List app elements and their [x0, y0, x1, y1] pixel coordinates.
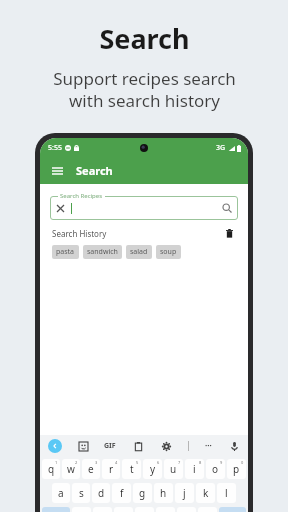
button[interactable]: a — [52, 483, 70, 503]
staticText: 8 — [199, 460, 202, 465]
staticText: p — [233, 462, 240, 476]
button[interactable]: r — [102, 459, 120, 479]
staticText: o — [212, 462, 219, 476]
staticText: r — [109, 462, 114, 476]
staticText: Search History — [52, 228, 107, 239]
staticText: GIF — [104, 441, 116, 451]
other: Clear — [56, 204, 65, 213]
button[interactable]: Back — [48, 439, 62, 453]
staticText: soup — [160, 247, 177, 257]
staticText: 4 — [115, 460, 118, 465]
staticText: l — [225, 486, 228, 500]
staticText: 7 — [178, 460, 181, 465]
button[interactable]: k — [196, 483, 215, 503]
button[interactable]: j — [175, 483, 194, 503]
staticText: i — [193, 462, 196, 476]
staticText: d — [98, 486, 105, 500]
button[interactable]: g — [133, 483, 152, 503]
staticText: u — [170, 462, 177, 476]
staticText: k — [203, 486, 209, 500]
staticText: 1 — [55, 460, 58, 465]
button[interactable]: clipboard — [132, 440, 144, 452]
staticText: e — [88, 462, 94, 476]
staticText: 3 — [95, 460, 98, 465]
button[interactable]: pasta — [52, 245, 79, 259]
button[interactable]: q — [42, 459, 60, 479]
button[interactable]: l — [217, 483, 236, 503]
staticText: f — [120, 486, 124, 500]
button[interactable]: More — [205, 442, 212, 450]
other: Search — [222, 203, 232, 213]
staticText: t — [130, 462, 134, 476]
button[interactable]: o — [206, 459, 225, 479]
button[interactable]: settings — [160, 440, 172, 452]
staticText: salad — [130, 247, 148, 257]
button[interactable]: d — [92, 483, 110, 503]
staticText: 0 — [241, 460, 244, 465]
button[interactable]: u — [164, 459, 183, 479]
staticText: j — [183, 486, 186, 500]
button[interactable]: e — [82, 459, 100, 479]
staticText: Search — [99, 20, 190, 57]
staticText: pasta — [56, 247, 75, 257]
staticText: 3G — [216, 143, 226, 153]
staticText: w — [67, 462, 75, 476]
staticText: 5:55 — [48, 143, 62, 153]
staticText: a — [58, 486, 64, 500]
button[interactable]: Clear — [50, 196, 238, 220]
staticText: Support recipes search with search histo… — [53, 67, 236, 112]
staticText: Search Recipes — [60, 192, 103, 200]
staticText: 6 — [157, 460, 160, 465]
staticText: y — [150, 462, 156, 476]
button[interactable]: f — [112, 483, 131, 503]
button[interactable]: s — [72, 483, 90, 503]
button[interactable]: Shift — [42, 507, 70, 512]
staticText: s — [79, 486, 84, 500]
staticText: sandwich — [87, 247, 118, 257]
staticText: 9 — [220, 460, 223, 465]
button[interactable]: Menu — [48, 162, 66, 180]
staticText: 2 — [75, 460, 78, 465]
button[interactable]: y — [143, 459, 162, 479]
button[interactable]: Clear history — [222, 226, 236, 240]
button[interactable]: i — [185, 459, 204, 479]
button[interactable]: GIF — [104, 441, 116, 451]
button[interactable]: sandwich — [83, 245, 122, 259]
button[interactable]: t — [122, 459, 141, 479]
staticText: h — [160, 486, 167, 500]
button[interactable]: p — [227, 459, 246, 479]
staticText: 5 — [136, 460, 139, 465]
button[interactable]: soup — [156, 245, 181, 259]
button[interactable]: salad — [126, 245, 152, 259]
button[interactable]: Backspace — [219, 507, 246, 512]
staticText: q — [48, 462, 55, 476]
button[interactable]: w — [62, 459, 80, 479]
staticText: g — [139, 486, 146, 500]
button[interactable]: sticker — [77, 440, 89, 452]
staticText: ••• — [205, 442, 212, 450]
button[interactable]: h — [154, 483, 173, 503]
button[interactable]: mic — [228, 440, 240, 452]
staticText: Search — [76, 163, 113, 178]
